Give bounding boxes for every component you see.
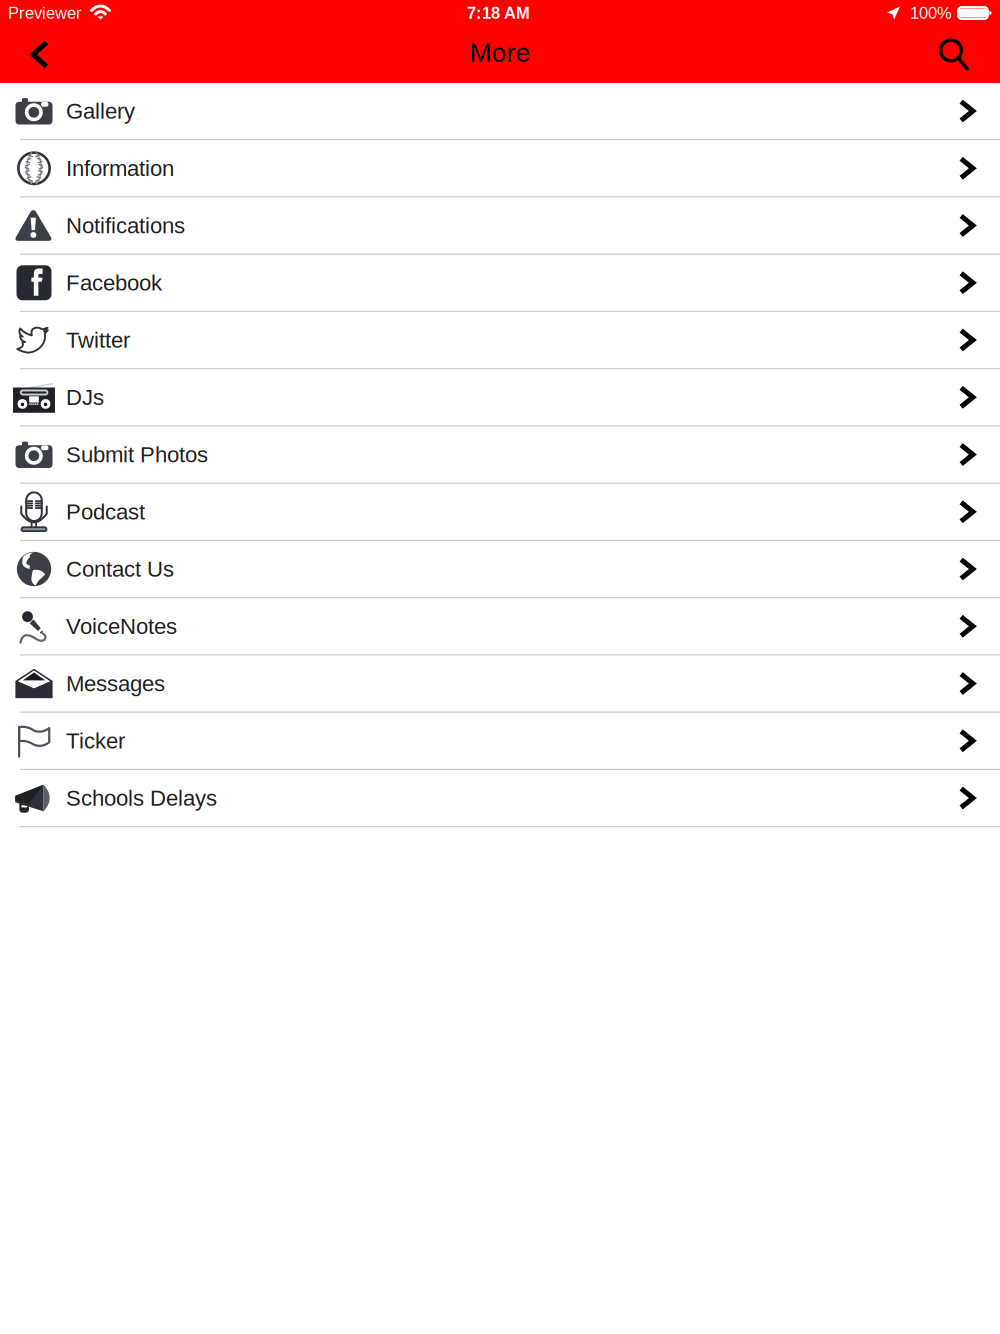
staticText: Facebook (66, 270, 162, 295)
staticText: Podcast (66, 499, 145, 524)
staticText: VoiceNotes (66, 614, 177, 639)
button[interactable]: Twitter (0, 312, 1000, 369)
button[interactable]: Information (0, 140, 1000, 197)
staticText: More (469, 38, 530, 67)
staticText: Information (66, 156, 174, 181)
staticText: Messages (66, 671, 165, 696)
button[interactable]: VoiceNotes (0, 598, 1000, 655)
staticText: Notifications (66, 213, 185, 238)
staticText: 100% (910, 4, 952, 22)
staticText: Schools Delays (66, 786, 217, 810)
button[interactable]: Notifications (0, 197, 1000, 255)
button[interactable]: Ticker (0, 713, 1000, 770)
staticText: Gallery (66, 99, 135, 123)
staticText: Twitter (66, 328, 130, 352)
button[interactable]: Submit Photos (0, 426, 1000, 484)
button[interactable]: Search (911, 32, 1000, 77)
staticText: 7:18 AM (467, 4, 530, 22)
button[interactable]: Facebook (0, 255, 1000, 312)
staticText: Previewer (8, 4, 82, 22)
button[interactable]: Gallery (0, 83, 1000, 140)
staticText: Ticker (66, 728, 125, 753)
staticText: Contact Us (66, 557, 174, 581)
button[interactable]: Podcast (0, 484, 1000, 541)
button[interactable]: Schools Delays (0, 770, 1000, 827)
staticText: Submit Photos (66, 442, 208, 467)
button[interactable]: Messages (0, 655, 1000, 713)
button[interactable]: Contact Us (0, 541, 1000, 598)
staticText: DJs (66, 385, 104, 410)
button[interactable]: DJs (0, 369, 1000, 426)
button[interactable]: Back (0, 33, 75, 75)
